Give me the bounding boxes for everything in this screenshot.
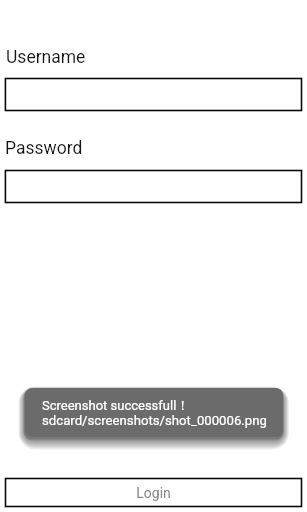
- button[interactable]: Login: [5, 478, 302, 507]
- staticText: sdcard/screenshots/shot_000006.png: [42, 413, 267, 428]
- button[interactable]: [5, 78, 302, 111]
- staticText: Screenshot successfull！: [42, 397, 190, 413]
- staticText: Password: [5, 138, 83, 159]
- staticText: Username: [6, 47, 86, 68]
- staticText: Login: [136, 485, 171, 501]
- button[interactable]: [5, 170, 302, 203]
